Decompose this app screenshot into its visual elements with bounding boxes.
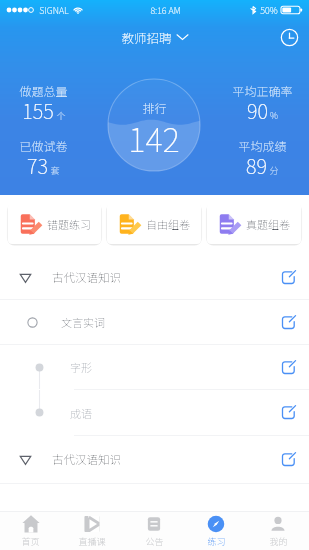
button[interactable]: 直播课 [61,512,123,550]
button[interactable]: 练习 [185,512,247,550]
staticText: 我的 [269,535,288,548]
staticText: 练习 [207,535,226,548]
staticText: 142 [128,114,180,162]
staticText: 73 [27,151,48,180]
staticText: 文言实词 [61,314,105,330]
staticText: 首页 [21,535,40,548]
staticText: 自由组卷 [146,216,190,232]
staticText: 真题组卷 [246,216,290,232]
button[interactable]: 古代汉语知识 [0,256,309,299]
staticText: 套 [50,164,60,177]
staticText: % [270,109,278,122]
button[interactable]: 我的 [247,512,309,550]
staticText: 已做试卷 [19,137,68,154]
staticText: 8:16 AM [150,4,181,17]
staticText: 个 [56,109,66,122]
button[interactable]: Practice 文言实词 [267,300,309,344]
staticText: 做题总量 [19,82,68,99]
staticText: 90 [247,96,268,125]
staticText: 平均成绩 [238,137,287,154]
button[interactable]: 自由组卷 [107,203,201,244]
staticText: 155 [22,96,54,125]
button[interactable]: History [269,20,309,54]
staticText: 公告 [145,535,164,548]
button[interactable]: 成语 [0,390,309,435]
button[interactable]: Practice 古代汉语知识 [267,436,309,483]
button[interactable]: 真题组卷 [207,203,301,244]
staticText: 直播课 [78,535,106,548]
button[interactable]: Practice 字形 [267,345,309,389]
staticText: 古代汉语知识 [52,451,121,468]
staticText: 字形 [70,359,92,375]
button[interactable]: 古代汉语知识 [0,436,309,483]
staticText: 50% [260,4,278,17]
button[interactable]: 教师招聘 [121,28,188,46]
staticText: 排行 [142,99,167,116]
staticText: 平均正确率 [232,82,293,99]
staticText: 成语 [70,405,92,421]
button[interactable]: Practice 古代汉语知识 [267,256,309,299]
button[interactable]: 字形 [0,345,309,389]
staticText: 分 [269,164,279,177]
button[interactable]: 公告 [123,512,185,550]
staticText: 古代汉语知识 [52,269,121,286]
button[interactable]: Practice 成语 [267,390,309,435]
button[interactable]: 错题练习 [8,203,101,244]
button[interactable]: 首页 [0,512,61,550]
button[interactable]: 文言实词 [0,300,309,344]
staticText: 教师招聘 [121,28,172,46]
staticText: 错题练习 [47,216,91,232]
staticText: 89 [246,151,267,180]
staticText: SIGNAL [39,4,69,17]
